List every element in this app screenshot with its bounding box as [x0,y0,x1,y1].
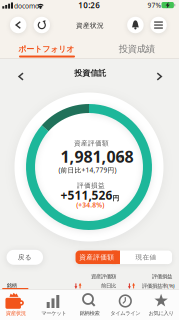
staticText: 97% [147,1,161,10]
staticText: 資産評価額 [91,273,116,280]
staticText: 1,981,068 [60,146,133,167]
staticText: 前日比 [101,282,116,289]
button[interactable]: 戻る [7,250,43,265]
button[interactable] [14,69,28,83]
button[interactable]: 資産状況 [0,290,34,320]
button[interactable]: タイムライン [107,290,143,320]
staticText: (+34.8%) [76,200,104,209]
staticText: タイムライン [110,310,140,317]
button[interactable]: 投資成績 [92,40,179,57]
staticText: 評価損益 [77,181,105,190]
button[interactable] [150,17,167,33]
button[interactable]: マーケット [36,290,72,320]
button[interactable]: お気に入り [143,290,179,320]
staticText: 10:26 [78,0,100,10]
staticText: マーケット [41,310,66,317]
staticText: (前日比+14,779円) [58,166,116,174]
staticText: 資産状況 [6,310,26,317]
button[interactable] [33,17,50,33]
staticText: 資産評価額 [74,139,109,147]
staticText: 資産状況 [76,21,104,30]
staticText: ポートフォリオ [18,44,74,54]
staticText: 銘柄検索 [79,310,99,317]
button[interactable] [127,17,144,33]
staticText: 評価損益率(%) [142,282,175,289]
staticText: 投資信託 [74,68,106,78]
staticText: 銘柄 [7,282,17,289]
staticText: お気に入り [149,310,174,317]
staticText: +511,526円 [60,187,119,203]
button[interactable]: 銘柄検索 [71,290,107,320]
button[interactable]: 資産評価額 [75,251,120,264]
button[interactable]: ポートフォリオ [2,40,91,57]
button[interactable]: 資産評価額 [70,271,120,291]
staticText: 円 [119,155,124,161]
staticText: docomo [14,1,39,10]
button[interactable] [10,17,26,33]
button[interactable]: 現在値 [120,251,172,264]
button[interactable]: 評価損益 [121,271,177,291]
staticText: 評価損益 [152,273,172,280]
staticText: 戻る [18,253,32,261]
staticText: 現在値 [135,253,156,261]
staticText: 投資成績 [119,43,155,55]
button[interactable] [152,69,166,83]
staticText: 資産評価額 [79,253,114,261]
button[interactable]: 銘柄 [0,273,34,295]
